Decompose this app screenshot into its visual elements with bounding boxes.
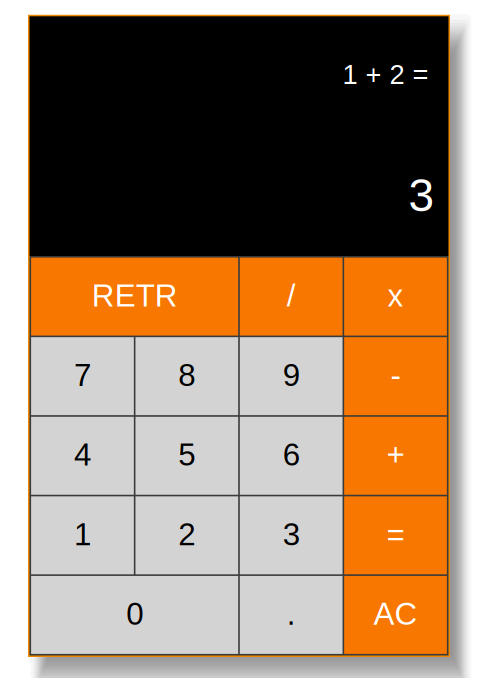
staticText: 1 + 2 = (342, 59, 428, 90)
button[interactable]: 5 (135, 417, 238, 495)
button[interactable]: 3 (240, 496, 343, 574)
staticText: / (287, 278, 296, 313)
button[interactable]: / (240, 258, 343, 336)
staticText: + (386, 437, 404, 472)
button[interactable]: + (344, 417, 447, 495)
staticText: 6 (283, 437, 300, 472)
button[interactable]: - (344, 337, 447, 415)
button[interactable]: RETR (31, 258, 238, 336)
staticText: 5 (178, 437, 195, 472)
button[interactable]: 4 (31, 417, 134, 495)
button[interactable]: . (240, 576, 343, 654)
staticText: 2 (178, 517, 195, 552)
button[interactable]: 1 (31, 496, 134, 574)
staticText: 3 (408, 170, 434, 221)
staticText: 9 (283, 358, 300, 393)
button[interactable]: 0 (31, 576, 238, 654)
button[interactable]: 8 (135, 337, 238, 415)
staticText: - (390, 358, 400, 393)
button[interactable]: 2 (135, 496, 238, 574)
staticText: x (387, 278, 403, 313)
button[interactable]: = (344, 496, 447, 574)
staticText: 8 (178, 358, 195, 393)
button[interactable]: 9 (240, 337, 343, 415)
staticText: 1 (74, 517, 91, 552)
staticText: AC (373, 596, 417, 631)
staticText: 7 (74, 358, 91, 393)
button[interactable]: 7 (31, 337, 134, 415)
button[interactable]: x (344, 258, 447, 336)
button[interactable]: AC (344, 576, 447, 654)
staticText: RETR (92, 278, 178, 313)
button[interactable]: 6 (240, 417, 343, 495)
staticText: . (287, 596, 296, 631)
staticText: = (386, 517, 404, 552)
staticText: 4 (74, 437, 91, 472)
staticText: 0 (126, 596, 143, 631)
staticText: 3 (283, 517, 300, 552)
